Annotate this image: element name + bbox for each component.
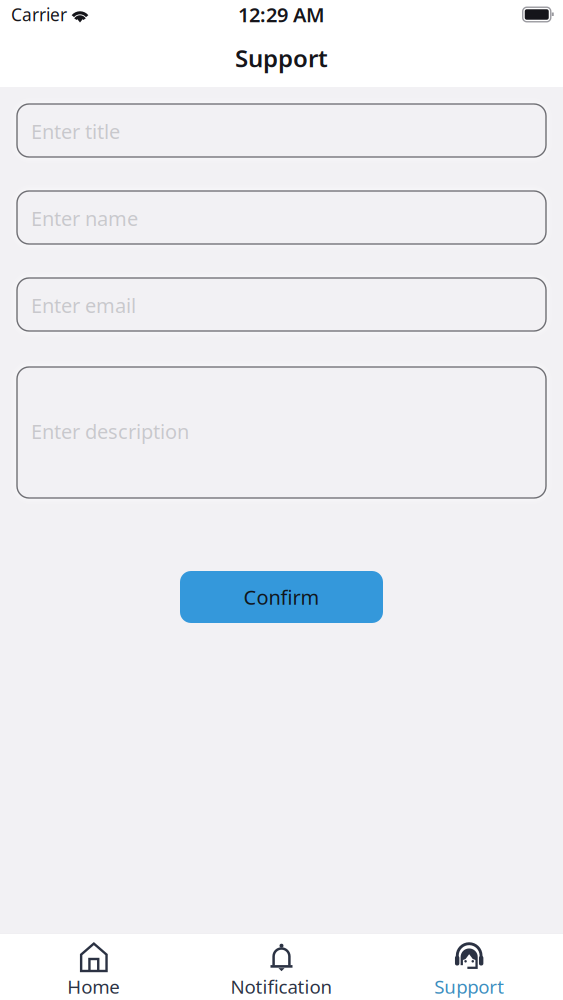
button[interactable]: Enter description (17, 367, 546, 498)
staticText: Notification (230, 974, 332, 999)
staticText: Carrier (11, 3, 67, 26)
button[interactable]: Enter title (17, 104, 546, 157)
staticText: Enter description (31, 418, 189, 445)
staticText: 12:29 AM (238, 1, 325, 28)
button[interactable]: Enter name (17, 191, 546, 244)
button[interactable]: Notification (188, 934, 375, 1000)
staticText: Confirm (243, 584, 319, 610)
staticText: Support (235, 42, 328, 74)
staticText: Enter name (31, 205, 138, 232)
staticText: Enter email (31, 292, 136, 319)
staticText: Home (67, 974, 120, 999)
staticText: Enter title (31, 118, 120, 145)
button[interactable]: Home (0, 934, 188, 1000)
staticText: Support (434, 974, 504, 999)
button[interactable]: Enter email (17, 278, 546, 331)
button[interactable]: Support (375, 934, 563, 1000)
button[interactable]: Confirm (180, 571, 383, 623)
